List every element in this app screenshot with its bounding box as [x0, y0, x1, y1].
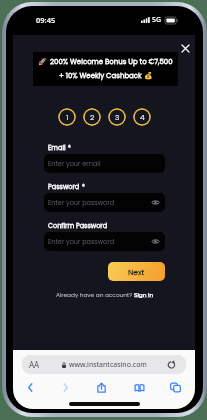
staticText: www.instantcasino.com — [69, 360, 147, 370]
button[interactable]: AA — [22, 355, 186, 374]
button[interactable]: 2 — [83, 108, 101, 126]
button[interactable]: Enter your password — [44, 232, 165, 251]
staticText: Next — [128, 267, 145, 277]
button[interactable]: Bookmarks — [127, 375, 151, 399]
other: Show password — [152, 199, 159, 206]
staticText: AA — [29, 359, 40, 370]
button[interactable]: Sign In — [134, 291, 154, 299]
other: Reload — [167, 360, 176, 369]
staticText: Enter your email — [48, 159, 101, 168]
button[interactable]: Enter your password — [44, 193, 165, 212]
staticText: 4 — [140, 112, 145, 122]
staticText: 2 — [90, 112, 95, 122]
button[interactable]: Next — [108, 262, 165, 281]
staticText: Password — [48, 182, 80, 191]
other: Show password — [152, 238, 159, 245]
staticText: Sign In — [134, 291, 154, 299]
button[interactable]: Close — [177, 40, 193, 56]
button[interactable]: 1 — [58, 108, 76, 126]
staticText: 🚀 — [38, 58, 47, 66]
button[interactable]: Tabs — [163, 375, 187, 399]
staticText: 3 — [115, 112, 120, 122]
button[interactable]: Enter your email — [44, 154, 165, 173]
staticText: 09:45 — [36, 15, 56, 25]
staticText: * — [80, 182, 85, 191]
staticText: Confirm Password — [48, 221, 108, 230]
staticText: Email — [48, 143, 66, 152]
button[interactable]: Back — [18, 375, 42, 399]
button[interactable]: 3 — [108, 108, 126, 126]
button[interactable]: Share — [89, 375, 113, 399]
staticText: Already have an account? — [56, 291, 134, 299]
staticText: * — [66, 143, 71, 152]
button[interactable]: Forward — [53, 375, 77, 399]
staticText: 💰 — [144, 72, 153, 80]
staticText: 5G — [152, 15, 162, 25]
staticText: Enter your password — [48, 198, 115, 207]
button[interactable]: 4 — [133, 108, 151, 126]
staticText: + 10% Weekly Cashback — [59, 71, 144, 81]
staticText: 200% Welcome Bonus Up to €7,500 — [50, 57, 173, 67]
staticText: 1 — [66, 112, 69, 122]
staticText: Enter your password — [48, 237, 115, 246]
